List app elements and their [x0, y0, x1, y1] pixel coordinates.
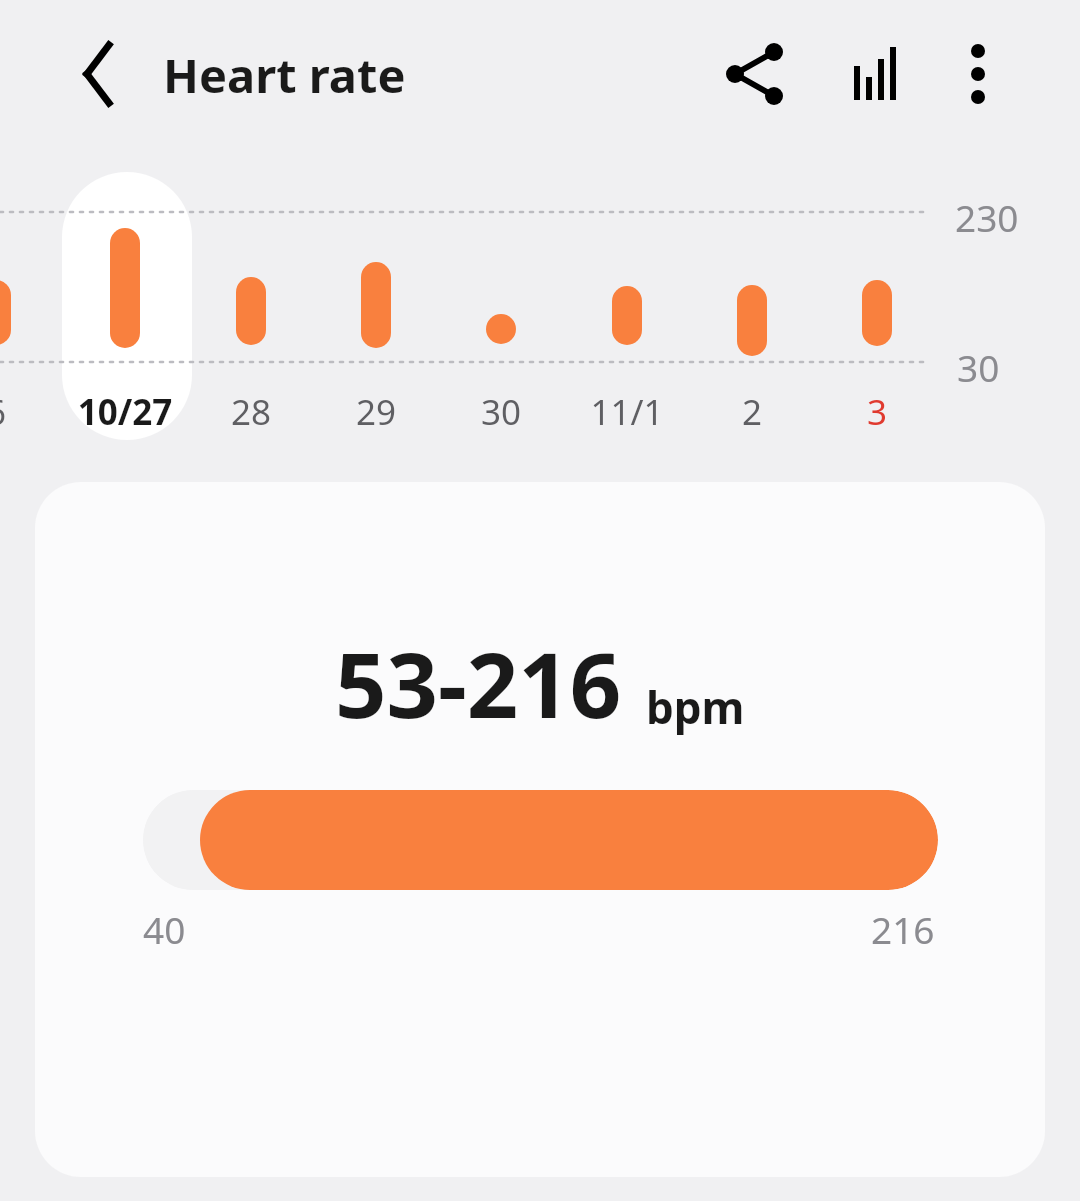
- button[interactable]: 28: [161, 388, 341, 436]
- button[interactable]: 10/27: [35, 388, 215, 436]
- staticText: 40: [143, 904, 186, 954]
- button[interactable]: 30: [411, 388, 591, 436]
- button[interactable]: Chart view: [836, 32, 920, 116]
- staticText: 2: [662, 388, 842, 436]
- button[interactable]: 11/1: [537, 388, 717, 436]
- staticText: Heart rate: [163, 43, 406, 107]
- staticText: 29: [286, 388, 466, 436]
- staticText: 3: [787, 388, 967, 436]
- staticText: 230: [955, 192, 1019, 242]
- staticText: 216: [871, 904, 935, 954]
- staticText: 30: [411, 388, 591, 436]
- button[interactable]: Back: [58, 34, 138, 114]
- staticText: 53-216: [335, 622, 622, 745]
- button[interactable]: 29: [286, 388, 466, 436]
- button[interactable]: 3: [787, 388, 967, 436]
- button[interactable]: More options: [936, 32, 1020, 116]
- staticText: 6: [0, 388, 86, 436]
- button[interactable]: Share: [713, 32, 797, 116]
- button[interactable]: 53-216: [35, 482, 1045, 1177]
- staticText: bpm: [646, 677, 745, 737]
- staticText: 11/1: [537, 388, 717, 436]
- staticText: 10/27: [35, 388, 215, 436]
- button[interactable]: 2: [662, 388, 842, 436]
- staticText: 28: [161, 388, 341, 436]
- button[interactable]: 6: [0, 388, 86, 436]
- button[interactable]: [62, 172, 192, 440]
- staticText: 30: [957, 342, 1000, 392]
- button[interactable]: Heart rate: [163, 43, 406, 107]
